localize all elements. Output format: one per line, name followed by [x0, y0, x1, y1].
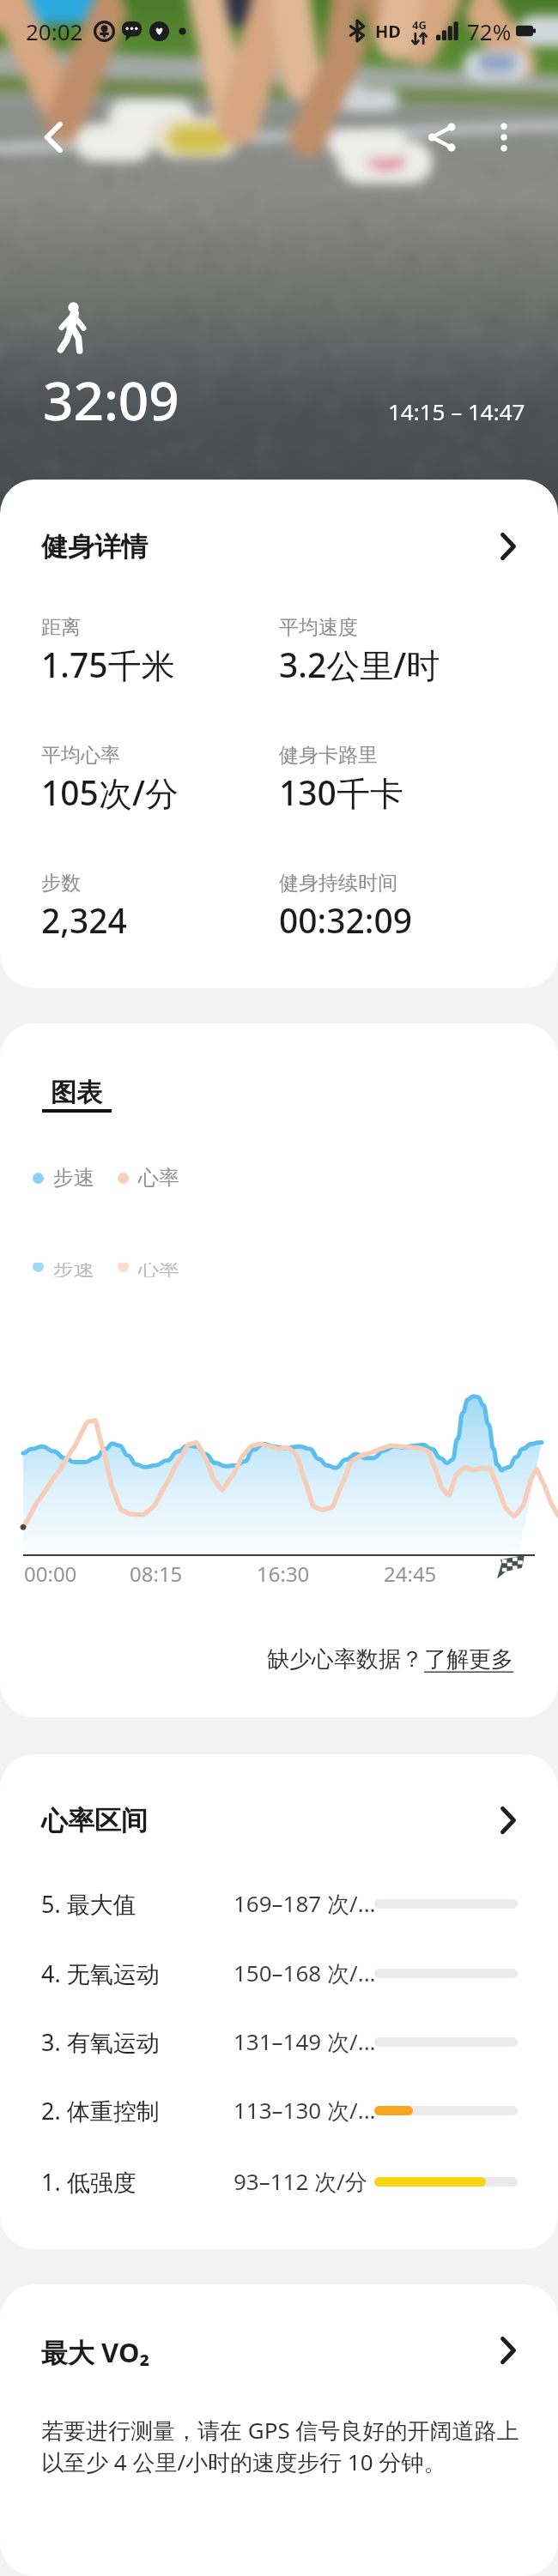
staticText: 2,324: [41, 897, 127, 943]
staticText: 2. 体重控制: [41, 2095, 160, 2127]
staticText: 以至少 4 公里/小时的速度步行 10 分钟。: [41, 2446, 446, 2477]
staticText: 健身持续时间: [279, 871, 397, 896]
staticText: 93–112 次/分: [234, 2166, 367, 2197]
staticText: 平均速度: [279, 615, 358, 640]
staticText: 5. 最大值: [41, 1888, 136, 1920]
button[interactable]: 4. 无氧运动: [0, 1939, 558, 2007]
button[interactable]: 1. 低强度: [0, 2147, 558, 2216]
button[interactable]: 了解更多: [424, 1645, 513, 1674]
staticText: 了解更多: [424, 1645, 513, 1674]
staticText: 1.75千米: [41, 642, 175, 687]
button[interactable]: 最大 VO₂: [0, 2284, 558, 2379]
staticText: 图表: [51, 1077, 102, 1109]
button[interactable]: Share: [409, 105, 475, 170]
staticText: 心率区间: [41, 1804, 148, 1837]
staticText: 3. 有氧运动: [41, 2026, 160, 2058]
staticText: 平均心率: [41, 743, 120, 768]
staticText: 113–130 次/...: [234, 2095, 376, 2126]
staticText: 4G: [412, 17, 427, 33]
staticText: 130千卡: [279, 769, 403, 815]
staticText: 169–187 次/...: [234, 1888, 376, 1919]
staticText: 00:32:09: [279, 897, 413, 943]
staticText: 105次/分: [41, 769, 179, 815]
button[interactable]: 2. 体重控制: [0, 2076, 558, 2145]
staticText: 16:30: [257, 1559, 310, 1588]
staticText: 心率: [138, 1263, 179, 1277]
button[interactable]: Back: [21, 105, 86, 170]
button[interactable]: 健身详情: [0, 480, 558, 574]
staticText: HD: [375, 20, 401, 43]
staticText: 步速: [53, 1263, 94, 1277]
button[interactable]: 心率区间: [0, 1754, 558, 1849]
staticText: 4. 无氧运动: [41, 1958, 160, 1989]
staticText: 心率: [138, 1165, 179, 1191]
staticText: 距离: [41, 615, 81, 640]
staticText: 最大 VO₂: [41, 2334, 150, 2370]
staticText: 步速: [53, 1165, 94, 1191]
staticText: 08:15: [130, 1559, 183, 1588]
staticText: 24:45: [384, 1559, 437, 1588]
staticText: 健身详情: [41, 530, 148, 564]
button[interactable]: 5. 最大值: [0, 1869, 558, 1938]
staticText: 14:15 – 14:47: [388, 396, 525, 426]
staticText: 若要进行测量，请在 GPS 信号良好的开阔道路上: [41, 2415, 519, 2446]
staticText: 72%: [467, 16, 512, 46]
staticText: 131–149 次/...: [234, 2026, 376, 2057]
staticText: 缺少心率数据？: [267, 1645, 423, 1674]
button[interactable]: 3. 有氧运动: [0, 2007, 558, 2076]
button[interactable]: 图表: [51, 1077, 102, 1109]
staticText: 00:00: [24, 1559, 77, 1588]
button[interactable]: More options: [471, 105, 537, 170]
staticText: 1. 低强度: [41, 2166, 136, 2198]
staticText: 步数: [41, 871, 81, 896]
staticText: 32:09: [43, 364, 179, 436]
staticText: 3.2公里/时: [279, 642, 440, 687]
staticText: 150–168 次/...: [234, 1958, 376, 1988]
staticText: 健身卡路里: [279, 743, 378, 768]
staticText: 20:02: [26, 16, 83, 46]
